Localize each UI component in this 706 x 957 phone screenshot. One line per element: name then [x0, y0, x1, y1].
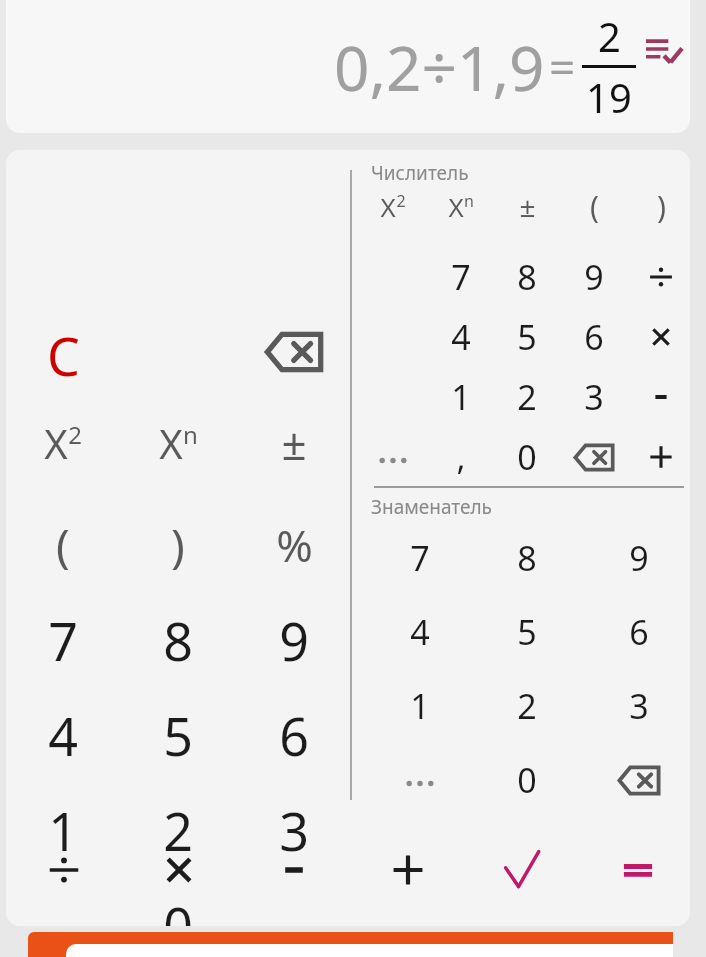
- button[interactable]: 2: [499, 373, 555, 421]
- button[interactable]: 3: [566, 373, 622, 421]
- staticText: 7: [410, 535, 430, 581]
- staticText: 3: [584, 374, 604, 420]
- button[interactable]: 0: [496, 754, 558, 806]
- staticText: X: [159, 416, 183, 470]
- button[interactable]: ±: [499, 184, 555, 228]
- staticText: 4: [410, 609, 430, 655]
- staticText: 1: [48, 795, 78, 857]
- button[interactable]: Multiply: [151, 842, 207, 898]
- button[interactable]: Plus: [633, 433, 689, 481]
- staticText: 9: [279, 605, 309, 667]
- button[interactable]: 9: [259, 605, 329, 667]
- staticText: 2: [517, 683, 537, 729]
- staticText: 0: [163, 890, 193, 926]
- button[interactable]: Minus: [633, 373, 689, 421]
- button[interactable]: (: [28, 514, 98, 576]
- button[interactable]: Multiply: [633, 313, 689, 361]
- button[interactable]: 3: [259, 795, 329, 857]
- staticText: 4: [451, 314, 471, 360]
- staticText: ,: [456, 434, 466, 480]
- staticText: C: [47, 320, 80, 384]
- button[interactable]: (: [566, 184, 622, 228]
- staticText: 5: [517, 609, 537, 655]
- button[interactable]: Backspace: [608, 754, 670, 806]
- button[interactable]: 1: [433, 373, 489, 421]
- staticText: 0: [517, 434, 537, 480]
- button[interactable]: C: [28, 320, 98, 384]
- staticText: 7: [451, 254, 471, 300]
- staticText: n: [464, 190, 474, 212]
- staticText: 8: [163, 605, 193, 667]
- staticText: Числитель: [371, 160, 469, 186]
- button[interactable]: ): [633, 184, 689, 228]
- staticText: 3: [629, 683, 649, 729]
- button[interactable]: 7: [389, 532, 451, 584]
- button[interactable]: 7: [433, 253, 489, 301]
- button[interactable]: 5: [496, 606, 558, 658]
- staticText: 0,2÷1,9: [334, 25, 545, 109]
- button[interactable]: 2: [496, 680, 558, 732]
- staticText: ): [657, 186, 666, 227]
- staticText: 6: [584, 314, 604, 360]
- button[interactable]: Plus: [380, 842, 436, 898]
- button[interactable]: ,: [433, 433, 489, 481]
- button[interactable]: 5: [499, 313, 555, 361]
- button[interactable]: 4: [28, 700, 98, 762]
- button[interactable]: Divide: [36, 842, 92, 898]
- button[interactable]: Minus: [266, 842, 322, 898]
- staticText: (: [590, 186, 599, 227]
- button[interactable]: 9: [608, 532, 670, 584]
- button[interactable]: Divide: [633, 253, 689, 301]
- staticText: Знаменатель: [371, 494, 492, 520]
- button[interactable]: 1: [28, 795, 98, 857]
- button[interactable]: Confirm: [496, 842, 552, 898]
- button[interactable]: 4: [389, 606, 451, 658]
- button[interactable]: 0: [499, 433, 555, 481]
- button[interactable]: 5: [143, 700, 213, 762]
- staticText: ±: [519, 187, 536, 225]
- button[interactable]: 8: [143, 605, 213, 667]
- button[interactable]: X: [28, 412, 98, 474]
- button[interactable]: 0: [143, 890, 213, 926]
- button[interactable]: ): [143, 514, 213, 576]
- staticText: 1: [451, 374, 471, 420]
- button[interactable]: Backspace: [262, 322, 326, 382]
- staticText: n: [183, 418, 198, 451]
- button[interactable]: More: [389, 754, 451, 806]
- button[interactable]: More: [365, 433, 421, 481]
- button[interactable]: ±: [259, 412, 329, 474]
- button[interactable]: X: [143, 412, 213, 474]
- button[interactable]: Backspace: [566, 433, 622, 481]
- staticText: 2: [517, 374, 537, 420]
- button[interactable]: 6: [566, 313, 622, 361]
- button[interactable]: 9: [566, 253, 622, 301]
- staticText: X: [380, 189, 396, 224]
- staticText: 2: [396, 190, 406, 212]
- button[interactable]: Advertisement: [28, 932, 673, 957]
- button[interactable]: 3: [608, 680, 670, 732]
- button[interactable]: Equals: [610, 842, 666, 898]
- button[interactable]: 6: [259, 700, 329, 762]
- button[interactable]: X: [433, 184, 489, 228]
- button[interactable]: 2: [143, 795, 213, 857]
- staticText: 6: [629, 609, 649, 655]
- button[interactable]: 8: [496, 532, 558, 584]
- staticText: 7: [48, 605, 78, 667]
- staticText: X: [448, 189, 464, 224]
- button[interactable]: X: [365, 184, 421, 228]
- button[interactable]: 4: [433, 313, 489, 361]
- button[interactable]: 8: [499, 253, 555, 301]
- button[interactable]: History: [644, 35, 684, 65]
- staticText: ): [171, 514, 185, 576]
- button[interactable]: 7: [28, 605, 98, 667]
- staticText: 9: [584, 254, 604, 300]
- button[interactable]: 1: [389, 680, 451, 732]
- button[interactable]: 6: [608, 606, 670, 658]
- staticText: 3: [279, 795, 309, 857]
- button[interactable]: %: [259, 514, 329, 576]
- staticText: 8: [517, 535, 537, 581]
- staticText: 0: [517, 757, 537, 803]
- staticText: =: [549, 35, 576, 98]
